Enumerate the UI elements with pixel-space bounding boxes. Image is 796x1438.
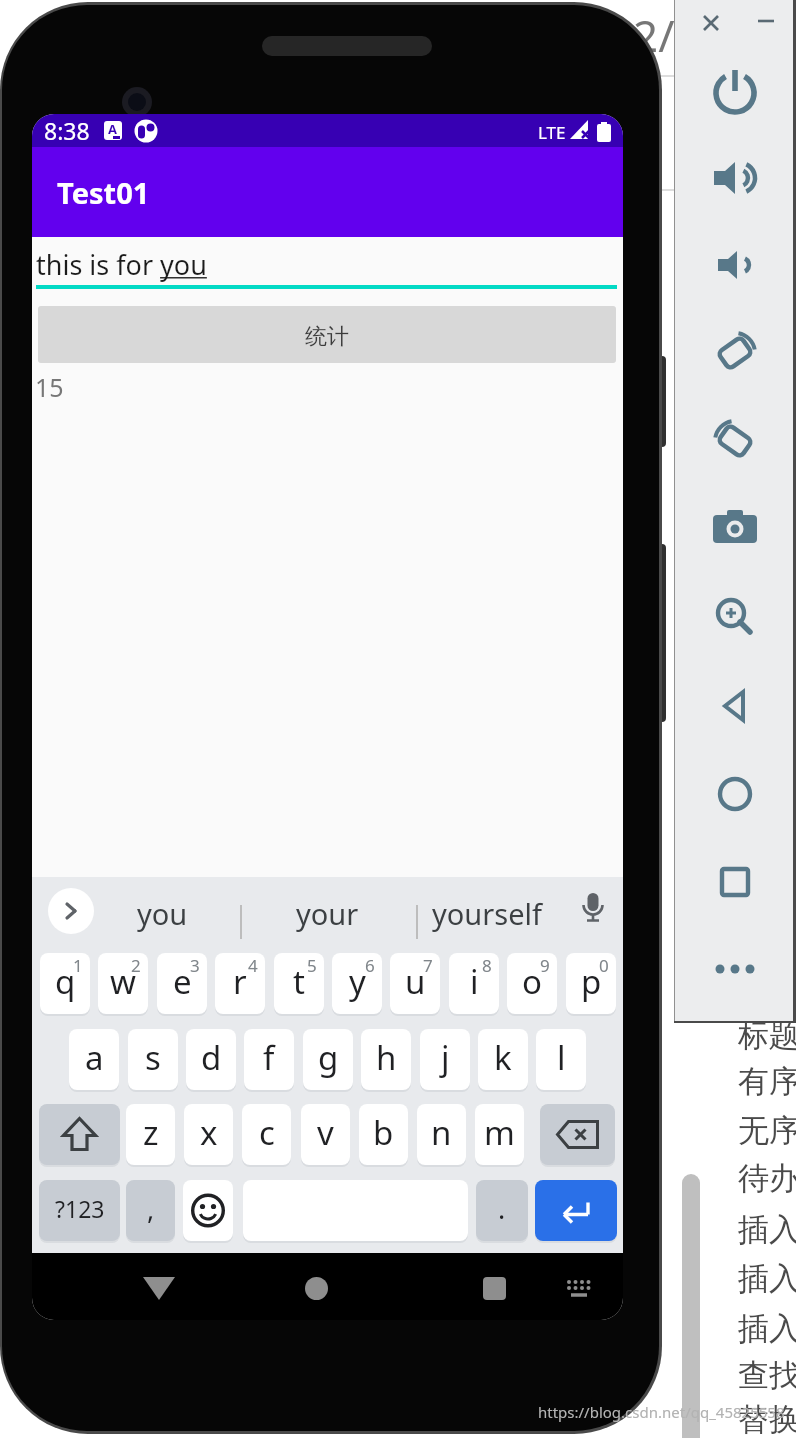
staticText: ?123 bbox=[55, 1193, 105, 1224]
button[interactable]: n bbox=[417, 1104, 466, 1165]
button[interactable]: , bbox=[126, 1180, 175, 1241]
button[interactable]: d bbox=[186, 1029, 236, 1090]
staticText: 有序列 bbox=[738, 1062, 796, 1101]
button[interactable]: m bbox=[475, 1104, 524, 1165]
button[interactable]: your bbox=[272, 887, 382, 939]
button[interactable]: this is for you bbox=[36, 246, 619, 301]
staticText: 9 bbox=[540, 954, 550, 977]
staticText: t bbox=[293, 959, 305, 1004]
button[interactable]: k bbox=[478, 1029, 528, 1090]
button[interactable] bbox=[540, 1104, 615, 1165]
staticText: 待办列 bbox=[738, 1159, 796, 1198]
button[interactable] bbox=[535, 1180, 617, 1241]
button[interactable]: v bbox=[301, 1104, 350, 1165]
button[interactable] bbox=[705, 411, 765, 471]
button[interactable] bbox=[705, 764, 765, 824]
staticText: y bbox=[349, 959, 366, 1004]
button[interactable]: . bbox=[476, 1180, 528, 1241]
button[interactable]: q bbox=[40, 953, 90, 1014]
button[interactable]: ?123 bbox=[39, 1180, 120, 1241]
button[interactable] bbox=[183, 1180, 233, 1241]
button[interactable]: f bbox=[244, 1029, 294, 1090]
button[interactable]: x bbox=[184, 1104, 233, 1165]
staticText: s bbox=[145, 1035, 161, 1080]
staticText: k bbox=[494, 1035, 512, 1080]
staticText: l bbox=[557, 1035, 566, 1080]
button[interactable] bbox=[705, 939, 765, 999]
button[interactable] bbox=[705, 676, 765, 736]
staticText: e bbox=[173, 959, 192, 1004]
staticText: , bbox=[147, 1190, 155, 1227]
staticText: v bbox=[317, 1110, 334, 1155]
button[interactable]: you bbox=[112, 887, 212, 939]
staticText: 标题 bbox=[738, 1016, 796, 1055]
button[interactable]: h bbox=[361, 1029, 411, 1090]
button[interactable]: w bbox=[98, 953, 148, 1014]
button[interactable]: l bbox=[536, 1029, 586, 1090]
staticText: this is for you bbox=[36, 246, 207, 283]
button[interactable]: c bbox=[242, 1104, 291, 1165]
staticText: r bbox=[233, 959, 247, 1004]
staticText: 0 bbox=[599, 954, 609, 977]
button[interactable] bbox=[143, 1277, 175, 1300]
button[interactable]: r bbox=[215, 953, 265, 1014]
staticText: z bbox=[143, 1110, 159, 1155]
staticText: 插入链 bbox=[738, 1259, 796, 1298]
button[interactable] bbox=[305, 1277, 328, 1300]
button[interactable]: e bbox=[157, 953, 207, 1014]
button[interactable]: j bbox=[420, 1029, 470, 1090]
button[interactable]: s bbox=[128, 1029, 178, 1090]
staticText: 15 bbox=[35, 370, 64, 404]
staticText: you bbox=[137, 894, 188, 933]
button[interactable] bbox=[39, 1104, 120, 1165]
staticText: 1 bbox=[73, 954, 83, 977]
button[interactable]: g bbox=[303, 1029, 353, 1090]
button[interactable]: b bbox=[359, 1104, 408, 1165]
staticText: 2/ bbox=[633, 5, 675, 65]
staticText: 2 bbox=[131, 954, 141, 977]
button[interactable] bbox=[702, 14, 720, 32]
button[interactable]: o bbox=[507, 953, 557, 1014]
staticText: f bbox=[263, 1035, 275, 1080]
button[interactable] bbox=[705, 148, 765, 208]
button[interactable]: a bbox=[69, 1029, 119, 1090]
staticText: g bbox=[318, 1035, 339, 1080]
button[interactable] bbox=[48, 888, 94, 934]
staticText: yourself bbox=[432, 894, 542, 933]
button[interactable] bbox=[578, 891, 608, 935]
button[interactable]: t bbox=[274, 953, 324, 1014]
staticText: . bbox=[498, 1190, 506, 1227]
staticText: 无序列 bbox=[738, 1111, 796, 1150]
button[interactable]: z bbox=[126, 1104, 175, 1165]
staticText: 插入图 bbox=[738, 1309, 796, 1348]
button[interactable]: u bbox=[390, 953, 440, 1014]
staticText: n bbox=[431, 1110, 452, 1155]
staticText: 8:38 bbox=[44, 115, 90, 146]
staticText: LTE bbox=[538, 121, 566, 144]
button[interactable] bbox=[705, 498, 765, 558]
button[interactable] bbox=[757, 18, 775, 26]
button[interactable] bbox=[705, 323, 765, 383]
button[interactable] bbox=[705, 235, 765, 295]
button[interactable]: yourself bbox=[422, 887, 552, 939]
staticText: d bbox=[201, 1035, 222, 1080]
button[interactable] bbox=[483, 1277, 506, 1300]
staticText: o bbox=[522, 959, 542, 1004]
staticText: p bbox=[581, 959, 602, 1004]
button[interactable] bbox=[705, 587, 765, 647]
button[interactable] bbox=[705, 60, 765, 120]
button[interactable]: 统计 bbox=[38, 306, 616, 363]
button[interactable]: y bbox=[332, 953, 382, 1014]
staticText: h bbox=[376, 1035, 397, 1080]
button[interactable]: p bbox=[566, 953, 616, 1014]
staticText: 6 bbox=[365, 954, 375, 977]
staticText: Test01 bbox=[57, 173, 150, 212]
staticText: a bbox=[85, 1035, 104, 1080]
button[interactable]: i bbox=[449, 953, 499, 1014]
staticText: 4 bbox=[248, 954, 258, 977]
staticText: 查找 bbox=[738, 1356, 796, 1395]
button[interactable] bbox=[705, 852, 765, 912]
button[interactable] bbox=[564, 1279, 594, 1299]
staticText: u bbox=[405, 959, 426, 1004]
